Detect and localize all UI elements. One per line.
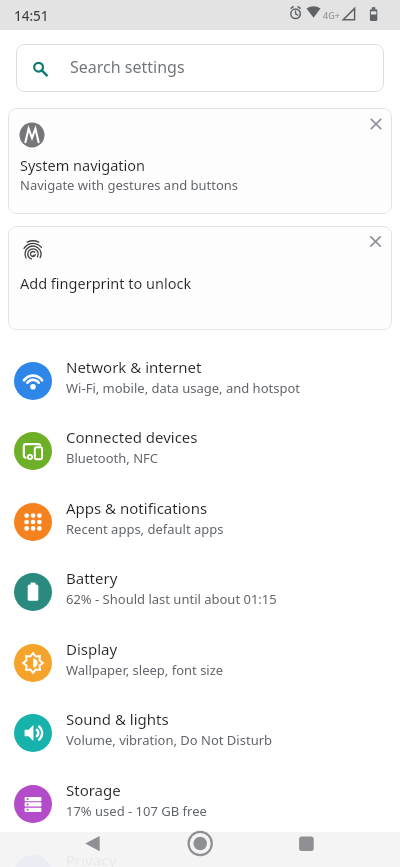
staticText: 14:51 bbox=[14, 7, 49, 25]
button[interactable] bbox=[60, 832, 130, 867]
staticText: Sound & lights bbox=[66, 709, 169, 729]
button[interactable]: Add fingerprint to unlock bbox=[8, 226, 392, 330]
staticText: Network & internet bbox=[66, 357, 202, 377]
staticText: Apps & notifications bbox=[66, 498, 208, 518]
staticText: 17% used - 107 GB free bbox=[66, 802, 207, 820]
button[interactable] bbox=[270, 832, 340, 867]
staticText: Display bbox=[66, 639, 118, 659]
staticText: Wi-Fi, mobile, data usage, and hotspot bbox=[66, 379, 300, 397]
staticText: 62% - Should last until about 01:15 bbox=[66, 590, 277, 608]
button[interactable]: Display bbox=[0, 627, 400, 698]
button[interactable] bbox=[165, 832, 235, 867]
staticText: Storage bbox=[66, 780, 121, 800]
staticText: 4G+ bbox=[323, 9, 340, 21]
button[interactable]: System navigation bbox=[8, 108, 392, 214]
staticText: Search settings bbox=[70, 56, 185, 78]
staticText: System navigation bbox=[20, 155, 146, 175]
staticText: Recent apps, default apps bbox=[66, 520, 224, 538]
staticText: Add fingerprint to unlock bbox=[20, 273, 192, 293]
staticText: Privacy bbox=[66, 850, 117, 867]
button[interactable]: Search settings bbox=[16, 44, 384, 92]
button[interactable]: Privacy bbox=[0, 838, 400, 867]
staticText: Bluetooth, NFC bbox=[66, 449, 159, 467]
button[interactable]: Sound & lights bbox=[0, 697, 400, 768]
button[interactable]: Connected devices bbox=[0, 415, 400, 486]
button[interactable]: Network & internet bbox=[0, 345, 400, 416]
staticText: Battery bbox=[66, 568, 118, 588]
button[interactable]: Storage bbox=[0, 768, 400, 839]
button[interactable]: Battery bbox=[0, 556, 400, 627]
button[interactable]: Apps & notifications bbox=[0, 486, 400, 557]
staticText: Connected devices bbox=[66, 427, 198, 447]
staticText: Volume, vibration, Do Not Disturb bbox=[66, 731, 273, 749]
staticText: Navigate with gestures and buttons bbox=[20, 176, 239, 194]
staticText: Wallpaper, sleep, font size bbox=[66, 661, 224, 679]
